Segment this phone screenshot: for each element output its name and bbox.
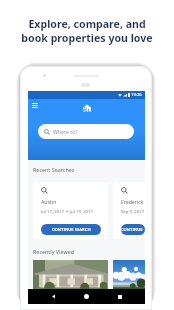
button[interactable]: Home — [84, 294, 89, 299]
staticText: 19:26 — [131, 92, 142, 98]
button[interactable]: Where to? — [38, 124, 134, 139]
button[interactable] — [113, 260, 145, 292]
staticText: Austin — [41, 198, 57, 205]
button[interactable]: CONTINUE SEARCH — [121, 224, 145, 235]
button[interactable]: CONTINUE SEARCH — [41, 224, 101, 235]
staticText: Where to? — [53, 128, 78, 135]
staticText: Explore, compare, and book properties yo… — [0, 17, 174, 45]
button[interactable]: Austin — [33, 182, 108, 239]
staticText: Sep 9, 2017 → Sep 12, 2017 — [121, 208, 145, 214]
staticText: CONTINUE SEARCH — [52, 227, 91, 233]
staticText: Frederick — [121, 198, 144, 205]
button[interactable]: Menu — [32, 103, 38, 109]
staticText: Recent Searches — [33, 166, 75, 173]
button[interactable]: Frederick — [113, 182, 145, 239]
staticText: Jul 17, 2017 → Jul 19, 2017 — [41, 208, 93, 214]
button[interactable]: Back — [51, 294, 56, 299]
button[interactable] — [33, 260, 108, 292]
staticText: Recently Viewed — [33, 248, 74, 255]
staticText: CONTINUE SEARCH — [121, 227, 145, 233]
